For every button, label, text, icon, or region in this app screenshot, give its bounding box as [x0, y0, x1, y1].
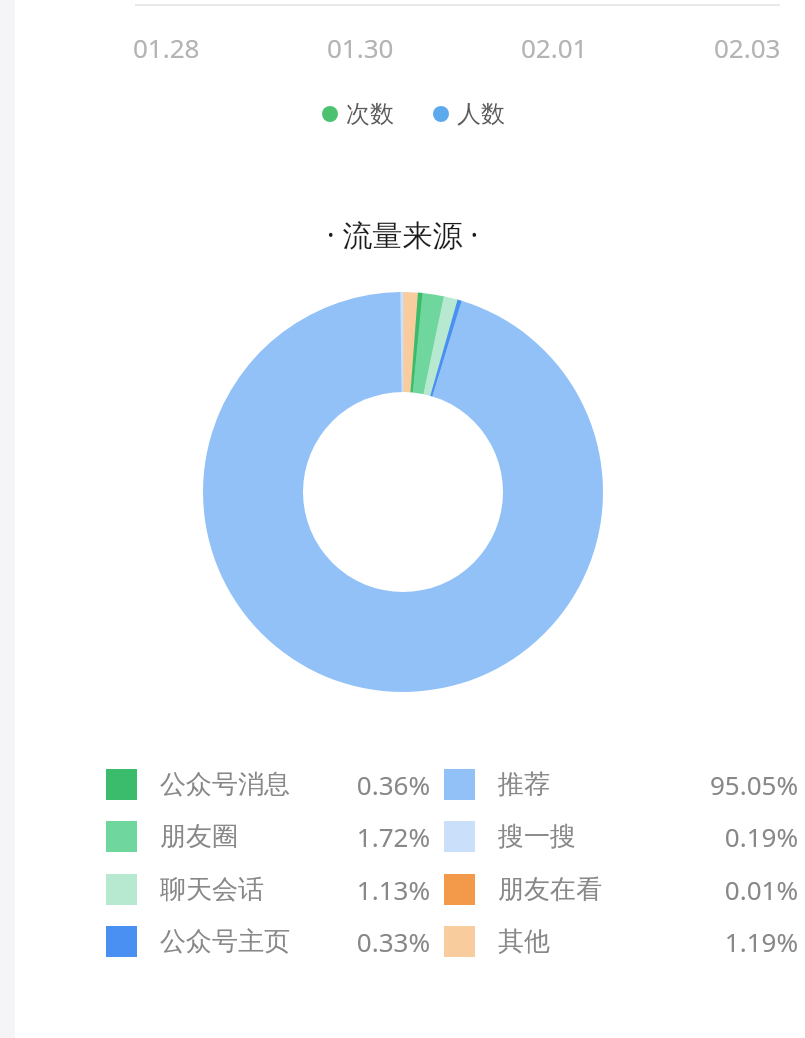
staticText: 聊天会话 [160, 873, 264, 906]
button[interactable]: 公众号主页 [106, 924, 430, 959]
staticText: 1.19% [658, 924, 798, 959]
staticText: 0.01% [658, 872, 798, 907]
staticText: 推荐 [498, 768, 550, 801]
staticText: 朋友在看 [498, 873, 602, 906]
button[interactable]: 公众号消息 [106, 767, 430, 802]
staticText: 01.30 [327, 30, 394, 65]
staticText: 搜一搜 [498, 820, 576, 853]
staticText: · 流量来源 · [0, 214, 805, 255]
staticText: 朋友圈 [160, 820, 238, 853]
staticText: 公众号主页 [160, 925, 290, 958]
staticText: 95.05% [658, 767, 798, 802]
staticText: 0.19% [658, 819, 798, 854]
staticText: 02.01 [521, 30, 588, 65]
staticText: 0.33% [320, 924, 430, 959]
button[interactable]: 推荐 [444, 767, 798, 802]
staticText: 1.72% [320, 819, 430, 854]
staticText: 02.03 [714, 30, 781, 65]
staticText: 01.28 [133, 30, 200, 65]
staticText: 其他 [498, 925, 550, 958]
button[interactable]: 聊天会话 [106, 872, 430, 907]
button[interactable]: 搜一搜 [444, 819, 798, 854]
staticText: 公众号消息 [160, 768, 290, 801]
button[interactable]: 次数 [322, 99, 505, 129]
staticText: 次数 [346, 99, 394, 129]
staticText: 人数 [457, 99, 505, 129]
staticText: 0.36% [320, 767, 430, 802]
button[interactable]: 朋友在看 [444, 872, 798, 907]
button[interactable]: 朋友圈 [106, 819, 430, 854]
button[interactable]: 其他 [444, 924, 798, 959]
staticText: 1.13% [320, 872, 430, 907]
